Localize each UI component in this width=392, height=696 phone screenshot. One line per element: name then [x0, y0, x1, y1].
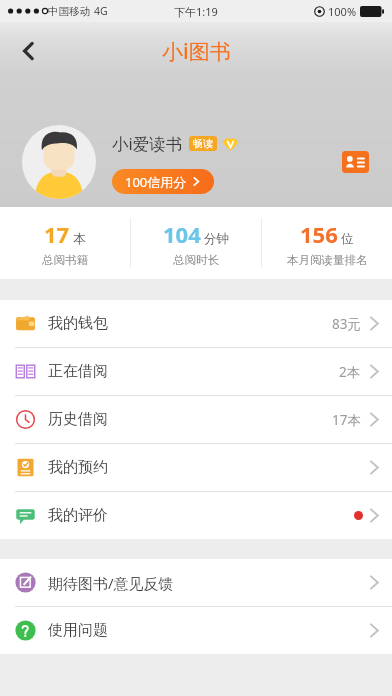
button[interactable]: 正在借阅	[0, 348, 392, 395]
staticText: 100%	[328, 4, 357, 19]
button[interactable]: 17	[0, 207, 130, 279]
staticText: 总阅时长	[173, 253, 219, 267]
staticText: 100信用分	[125, 173, 187, 191]
button[interactable]: Library card	[340, 147, 370, 177]
staticText: 使用问题	[48, 621, 108, 640]
staticText: 期待图书/意见反馈	[48, 573, 174, 593]
staticText: 中国移动	[48, 5, 90, 18]
staticText: 83元	[332, 315, 361, 333]
staticText: 2本	[339, 363, 361, 381]
button[interactable]: 104	[131, 207, 261, 279]
button[interactable]: 我的钱包	[0, 300, 392, 347]
button[interactable]: 我的预约	[0, 444, 392, 491]
staticText: 17本	[332, 411, 361, 429]
staticText: 我的钱包	[48, 314, 108, 333]
staticText: 本	[73, 231, 86, 247]
staticText: 156	[300, 219, 338, 249]
button[interactable]: 100信用分	[112, 169, 214, 194]
button[interactable]: 历史借阅	[0, 396, 392, 443]
button[interactable]: 我的评价	[0, 492, 392, 539]
staticText: 下午1:19	[174, 4, 218, 19]
staticText: 我的预约	[48, 458, 108, 477]
staticText: 我的评价	[48, 506, 108, 525]
button[interactable]: 156	[262, 207, 392, 279]
staticText: 本月阅读量排名	[287, 253, 368, 267]
staticText: 总阅书籍	[42, 253, 88, 267]
button[interactable]: Back	[6, 28, 52, 74]
button[interactable]: 使用问题	[0, 607, 392, 654]
staticText: 畅读	[193, 137, 213, 150]
staticText: 正在借阅	[48, 362, 108, 381]
staticText: 历史借阅	[48, 410, 108, 429]
button[interactable]: 期待图书/意见反馈	[0, 559, 392, 606]
staticText: 17	[44, 219, 70, 249]
staticText: 分钟	[204, 231, 229, 247]
button[interactable]: Avatar	[22, 125, 96, 199]
staticText: 位	[341, 231, 354, 247]
staticText: 4G	[94, 4, 108, 18]
staticText: 小i图书	[162, 37, 231, 66]
staticText: 104	[163, 219, 201, 249]
staticText: 小i爱读书	[112, 132, 183, 155]
